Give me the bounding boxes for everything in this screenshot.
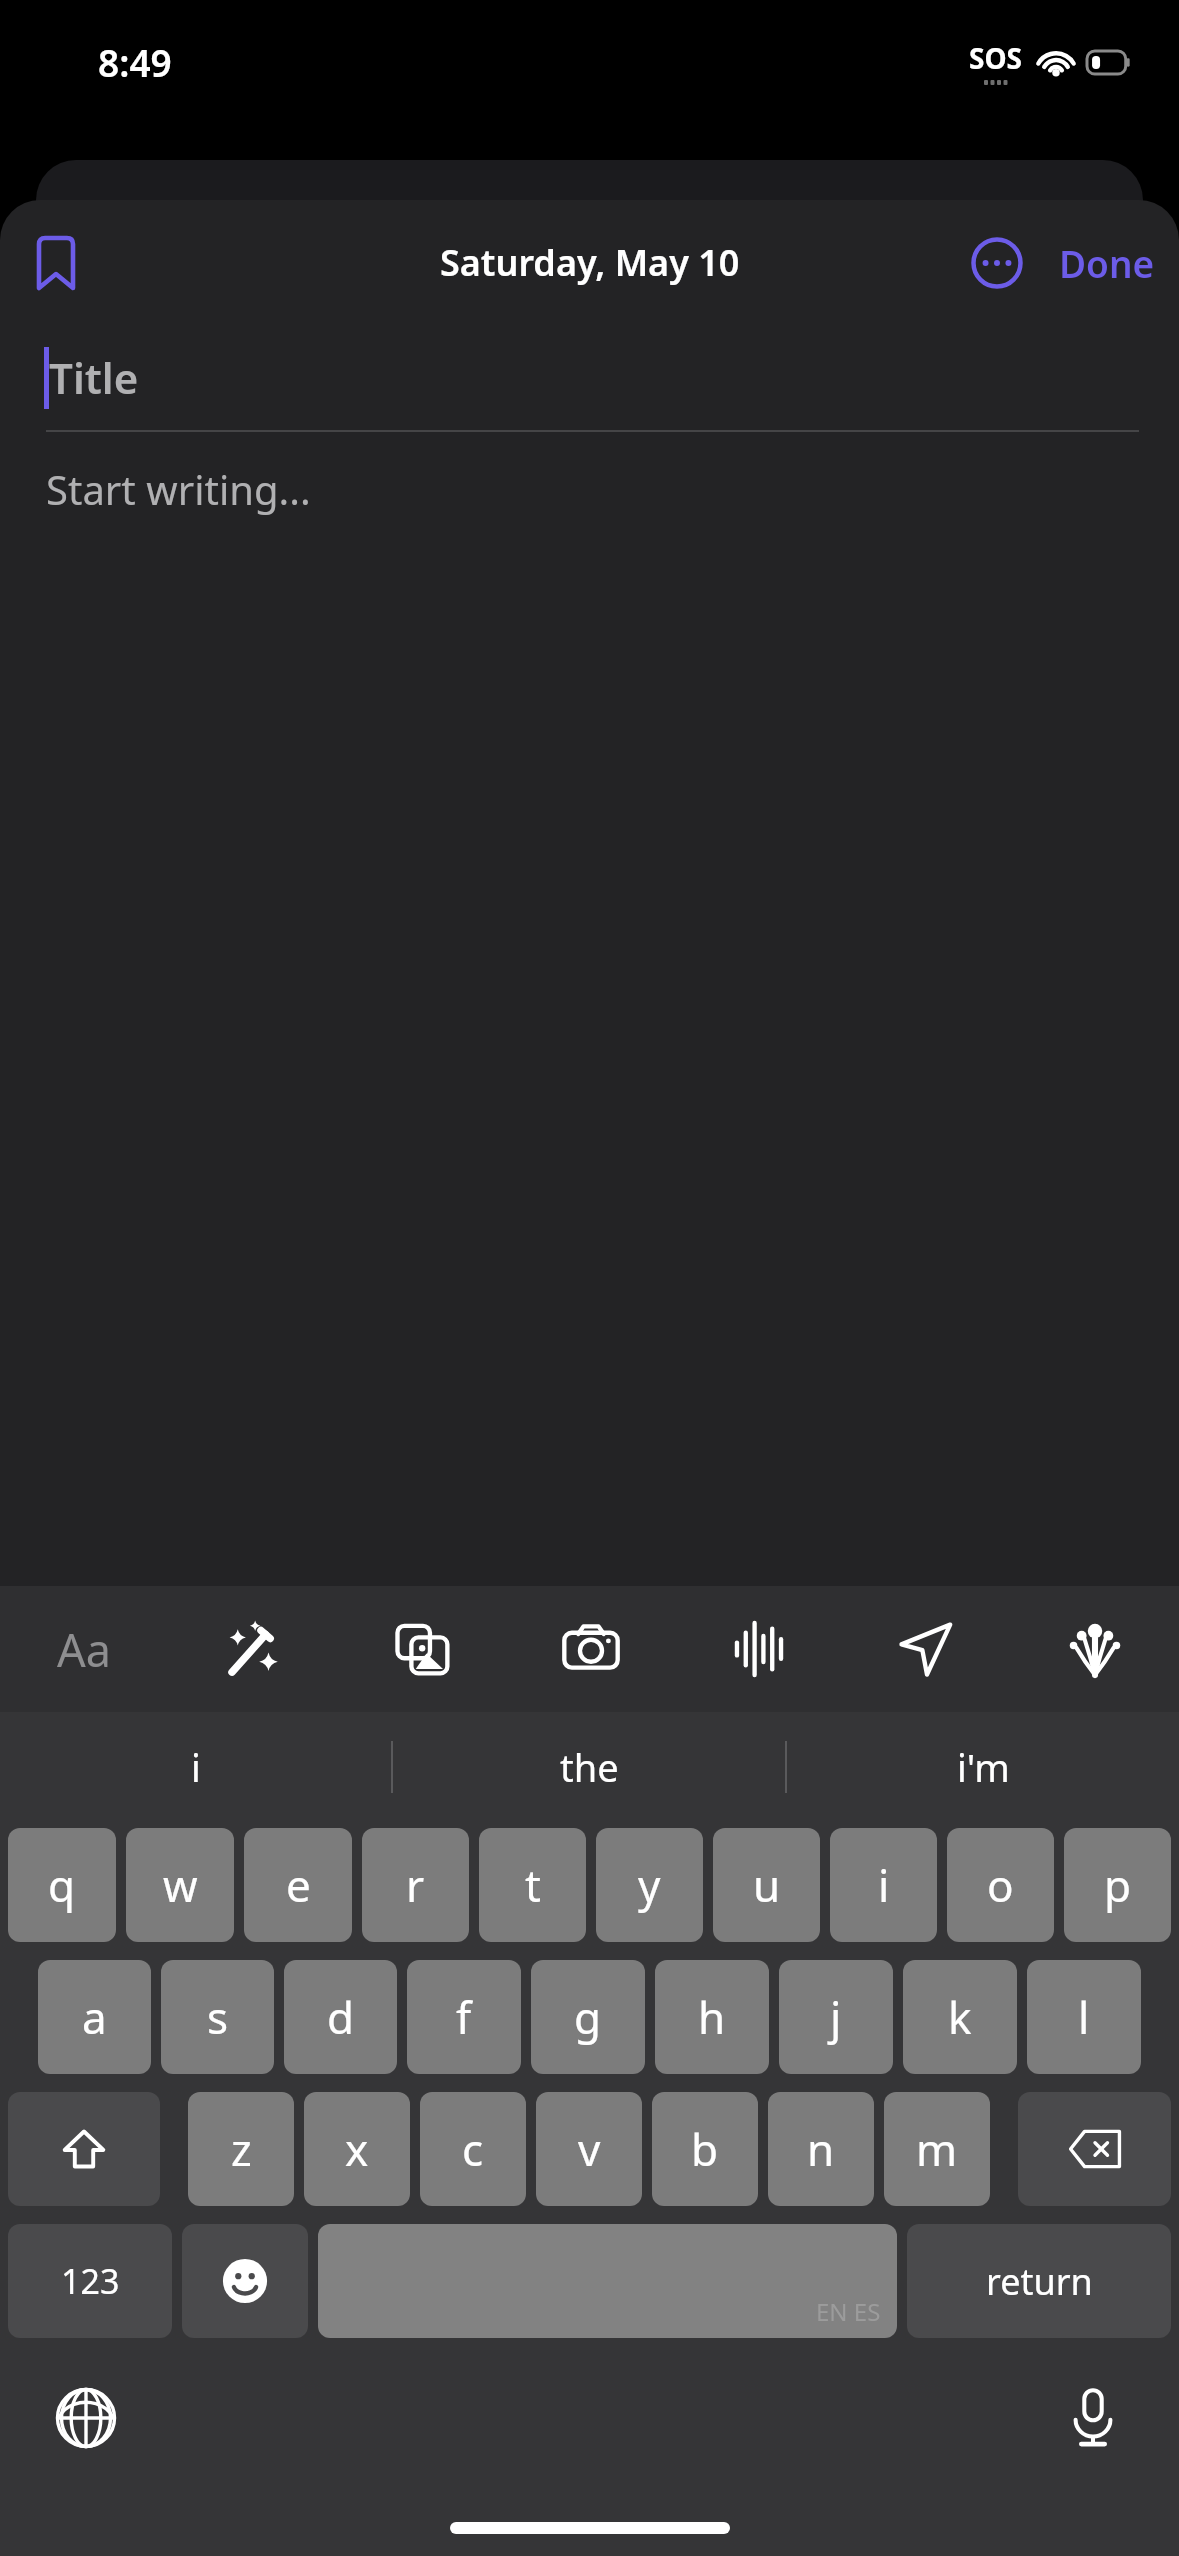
button[interactable]: Shift	[8, 2092, 160, 2206]
button[interactable]: 123	[8, 2224, 172, 2338]
button[interactable]: More options	[959, 225, 1035, 301]
button[interactable]: i	[830, 1828, 937, 1942]
button[interactable]: Photos	[338, 1586, 507, 1712]
staticText: t	[525, 1855, 541, 1915]
button[interactable]: s	[161, 1960, 274, 2074]
button[interactable]: Done	[1035, 222, 1179, 304]
button[interactable]: f	[407, 1960, 521, 2074]
button[interactable]: Camera	[507, 1586, 675, 1712]
staticText: j	[830, 1987, 842, 2047]
staticText: y	[638, 1855, 661, 1915]
button[interactable]: r	[362, 1828, 469, 1942]
staticText: f	[456, 1987, 472, 2047]
staticText: o	[987, 1855, 1014, 1915]
staticText: m	[916, 2119, 958, 2179]
staticText: r	[406, 1855, 425, 1915]
staticText: q	[48, 1855, 76, 1915]
button[interactable]: h	[655, 1960, 769, 2074]
button[interactable]: o	[947, 1828, 1054, 1942]
staticText: g	[574, 1987, 602, 2047]
button[interactable]: Change keyboard	[38, 2370, 134, 2466]
button[interactable]: i'm	[787, 1712, 1179, 1822]
staticText: the	[560, 1741, 619, 1793]
button[interactable]: q	[8, 1828, 116, 1942]
staticText: a	[82, 1987, 107, 2047]
button[interactable]: b	[652, 2092, 758, 2206]
button[interactable]: Delete	[1018, 2092, 1171, 2206]
button[interactable]: n	[768, 2092, 874, 2206]
staticText: c	[462, 2119, 484, 2179]
staticText: Saturday, May 10	[440, 238, 740, 287]
button[interactable]: m	[884, 2092, 990, 2206]
button[interactable]: i	[0, 1712, 391, 1822]
staticText: x	[345, 2119, 369, 2179]
staticText: n	[807, 2119, 835, 2179]
staticText: h	[698, 1987, 726, 2047]
button[interactable]: g	[531, 1960, 645, 2074]
button[interactable]: k	[903, 1960, 1017, 2074]
staticText: e	[286, 1855, 311, 1915]
staticText: Aa	[57, 1619, 112, 1680]
staticText: b	[691, 2119, 719, 2179]
button[interactable]: the	[393, 1712, 785, 1822]
staticText: return	[986, 2257, 1093, 2306]
button[interactable]: a	[38, 1960, 151, 2074]
button[interactable]: return	[907, 2224, 1171, 2338]
button[interactable]: u	[713, 1828, 820, 1942]
staticText: k	[948, 1987, 972, 2047]
button[interactable]: c	[420, 2092, 526, 2206]
button[interactable]: Magic	[169, 1586, 338, 1712]
staticText: d	[327, 1987, 355, 2047]
button[interactable]: Emoji	[182, 2224, 308, 2338]
staticText: i'm	[957, 1741, 1010, 1793]
staticText: w	[163, 1855, 198, 1915]
staticText: i	[878, 1855, 890, 1915]
staticText: SOS	[969, 39, 1023, 77]
staticText: z	[231, 2119, 252, 2179]
button[interactable]: y	[596, 1828, 703, 1942]
button[interactable]: x	[304, 2092, 410, 2206]
button[interactable]: t	[479, 1828, 586, 1942]
button[interactable]: l	[1027, 1960, 1141, 2074]
button[interactable]: j	[779, 1960, 893, 2074]
staticText: v	[578, 2119, 601, 2179]
staticText: p	[1104, 1855, 1132, 1915]
button[interactable]: e	[244, 1828, 352, 1942]
staticText: Done	[1059, 238, 1155, 288]
button[interactable]: v	[536, 2092, 642, 2206]
staticText: i	[191, 1741, 201, 1793]
staticText: 8:49	[98, 37, 172, 87]
staticText: Title	[49, 349, 139, 406]
staticText: l	[1078, 1987, 1090, 2047]
button[interactable]: w	[126, 1828, 234, 1942]
staticText: s	[207, 1987, 229, 2047]
button[interactable]: z	[188, 2092, 294, 2206]
staticText: EN ES	[816, 2295, 881, 2328]
button[interactable]: Send	[843, 1586, 1011, 1712]
button[interactable]: Bookmark	[20, 227, 92, 299]
button[interactable]: p	[1064, 1828, 1171, 1942]
button[interactable]: Effects	[1011, 1586, 1179, 1712]
button[interactable]: Audio	[675, 1586, 843, 1712]
staticText: 123	[61, 2258, 120, 2304]
button[interactable]: d	[284, 1960, 397, 2074]
staticText: u	[753, 1855, 781, 1915]
staticText: Start writing...	[46, 462, 311, 516]
button[interactable]: Space	[318, 2224, 897, 2338]
button[interactable]: Dictate	[1045, 2370, 1141, 2466]
button[interactable]: Format text	[0, 1586, 169, 1712]
